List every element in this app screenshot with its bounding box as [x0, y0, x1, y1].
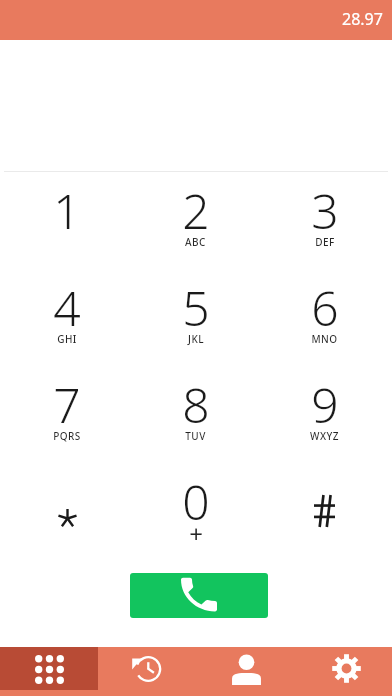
staticText: 6 [311, 275, 339, 340]
button[interactable]: Recent calls [98, 647, 196, 696]
button[interactable]: 9 [260, 372, 389, 469]
button[interactable]: 1 [3, 178, 131, 275]
staticText: DEF [315, 235, 335, 249]
staticText: JKL [188, 332, 204, 346]
staticText: 9 [311, 372, 339, 437]
staticText: 8 [182, 372, 210, 437]
staticText: 2 [182, 178, 210, 243]
staticText: 4 [53, 275, 81, 340]
button[interactable]: Star [3, 469, 131, 566]
button[interactable]: 2 [131, 178, 260, 275]
button[interactable]: 3 [260, 178, 389, 275]
button[interactable]: 0 [131, 469, 260, 566]
staticText: 0 [182, 469, 210, 534]
staticText: ABC [185, 235, 206, 249]
button[interactable]: Contacts [196, 647, 294, 696]
button[interactable]: Pound [260, 469, 389, 566]
button[interactable]: Keypad [0, 647, 98, 696]
staticText: 7 [53, 372, 81, 437]
staticText: 28.97 [342, 8, 383, 30]
staticText: GHI [57, 332, 77, 346]
staticText: TUV [185, 429, 206, 443]
staticText: + [189, 517, 203, 549]
staticText: PQRS [53, 429, 81, 443]
button[interactable]: 8 [131, 372, 260, 469]
button[interactable]: 5 [131, 275, 260, 372]
staticText: 5 [182, 275, 210, 340]
staticText: 1 [53, 178, 81, 243]
staticText: MNO [311, 332, 338, 346]
staticText: 3 [311, 178, 339, 243]
button[interactable]: 4 [3, 275, 131, 372]
button[interactable]: 6 [260, 275, 389, 372]
button[interactable]: 7 [3, 372, 131, 469]
button[interactable]: Call [130, 573, 268, 618]
button[interactable]: Settings [294, 647, 392, 696]
staticText: WXYZ [310, 429, 339, 443]
